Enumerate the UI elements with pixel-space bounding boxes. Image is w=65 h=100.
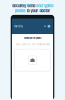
staticText: to your doctor [26, 8, 50, 13]
button[interactable]: Notifications [43, 25, 47, 28]
staticText: encrypted [36, 4, 53, 8]
staticText: photos [14, 8, 25, 13]
staticText: Securely send [12, 4, 35, 8]
button[interactable]: Account [47, 24, 51, 28]
staticText: Take a photo of your medication label [15, 43, 49, 46]
staticText: Medication photo [24, 37, 41, 39]
button[interactable] [14, 49, 50, 71]
staticText: mediq [14, 25, 23, 28]
